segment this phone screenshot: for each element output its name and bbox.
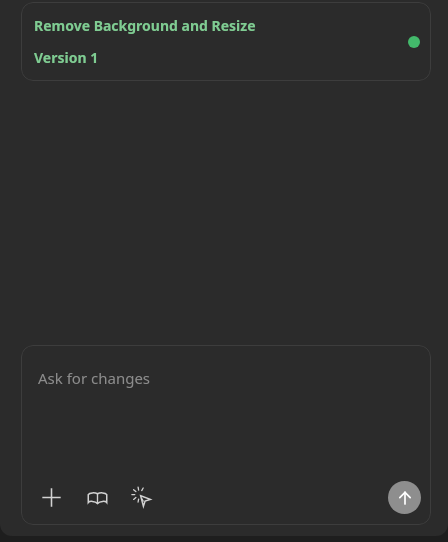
staticText: Version 1 xyxy=(34,48,99,67)
button[interactable]: Send xyxy=(388,481,421,514)
button[interactable]: Library xyxy=(81,481,113,513)
button[interactable]: Add attachment xyxy=(35,481,67,513)
button[interactable]: Ask for changes xyxy=(21,345,431,475)
button[interactable]: Select element xyxy=(125,481,157,513)
staticText: Ask for changes xyxy=(38,368,151,388)
staticText: Remove Background and Resize xyxy=(34,16,256,35)
button[interactable]: Remove Background and Resize xyxy=(21,2,431,81)
other: Status: complete xyxy=(407,35,421,49)
